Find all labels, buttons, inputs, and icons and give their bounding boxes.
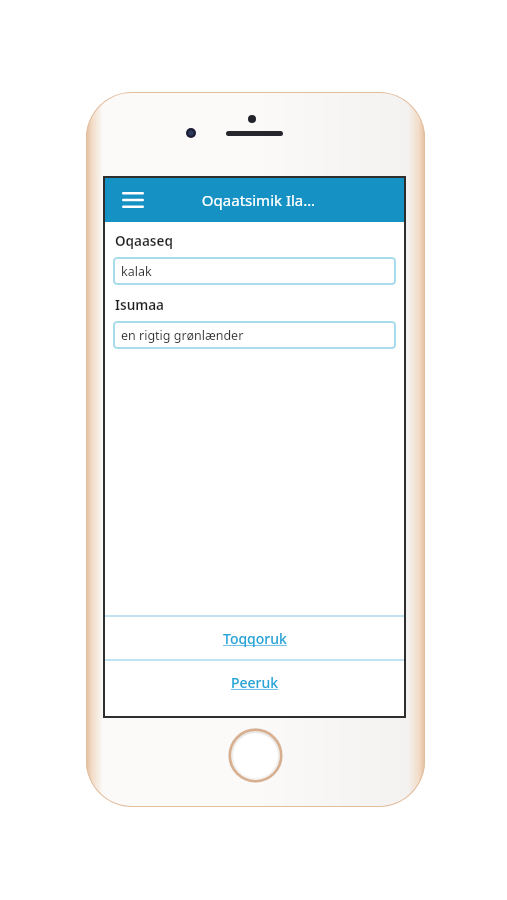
staticText: en rigtig grønlænder xyxy=(121,327,244,344)
staticText: Isumaa xyxy=(115,296,165,314)
button[interactable]: Peeruk xyxy=(105,661,404,703)
staticText: Peeruk xyxy=(231,673,279,692)
staticText: kalak xyxy=(121,263,152,280)
button[interactable]: Toqqoruk xyxy=(105,617,404,659)
button[interactable]: kalak xyxy=(113,257,396,285)
button[interactable]: en rigtig grønlænder xyxy=(113,321,396,349)
staticText: Toqqoruk xyxy=(223,629,287,648)
staticText: Oqaatsimik Ila… xyxy=(159,190,358,210)
button[interactable]: Open navigation menu xyxy=(113,180,153,220)
staticText: Oqaaseq xyxy=(115,232,173,250)
